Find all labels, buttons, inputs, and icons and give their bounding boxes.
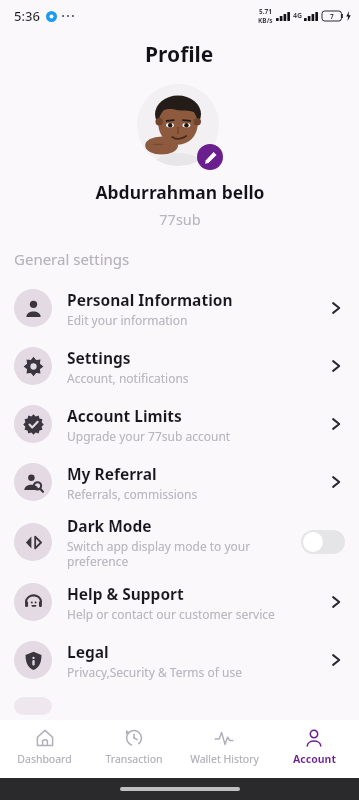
staticText: Edit your information (67, 312, 188, 328)
staticText: Help or contact our customer service (67, 606, 275, 622)
staticText: Account, notifications (67, 370, 189, 386)
staticText: Account Limits (67, 405, 182, 426)
staticText: Switch app display mode to your preferen… (67, 538, 293, 569)
staticText: 4G (293, 11, 303, 21)
staticText: Account (293, 752, 336, 766)
button[interactable]: Transaction (89, 720, 179, 778)
staticText: 7 (330, 12, 334, 21)
button[interactable]: Legal (0, 631, 359, 689)
button[interactable]: Dashboard (0, 720, 89, 778)
staticText: My Referral (67, 463, 157, 484)
button[interactable]: Account Limits (0, 395, 359, 453)
staticText: Wallet History (190, 752, 259, 766)
staticText: KB/s (258, 16, 273, 25)
staticText: Help & Support (67, 583, 184, 604)
button[interactable]: Dark mode toggle, off (301, 530, 345, 554)
button[interactable]: My Referral (0, 453, 359, 511)
staticText: Dark Mode (67, 515, 152, 536)
button[interactable] (137, 84, 219, 166)
staticText: Dashboard (17, 752, 72, 766)
button[interactable]: Edit profile photo (197, 144, 223, 170)
staticText: Upgrade your 77sub account (67, 428, 231, 444)
button[interactable]: Personal Information (0, 279, 359, 337)
button[interactable]: Help & Support (0, 573, 359, 631)
button[interactable]: Wallet History (179, 720, 269, 778)
button[interactable]: Dark Mode (0, 511, 359, 573)
staticText: Abdurrahman bello (95, 180, 265, 204)
staticText: Transaction (105, 752, 163, 766)
staticText: Profile (145, 40, 214, 69)
staticText: General settings (14, 249, 130, 269)
staticText: Referrals, commissions (67, 486, 198, 502)
staticText: Personal Information (67, 289, 233, 310)
staticText: 5.71 (259, 7, 272, 16)
staticText: Legal (67, 641, 109, 662)
staticText: 77sub (159, 209, 201, 229)
staticText: Privacy,Security & Terms of use (67, 664, 242, 680)
button[interactable]: Account (269, 720, 359, 778)
button[interactable]: Settings (0, 337, 359, 395)
staticText: Settings (67, 347, 131, 368)
staticText: 5:36 (14, 7, 40, 25)
